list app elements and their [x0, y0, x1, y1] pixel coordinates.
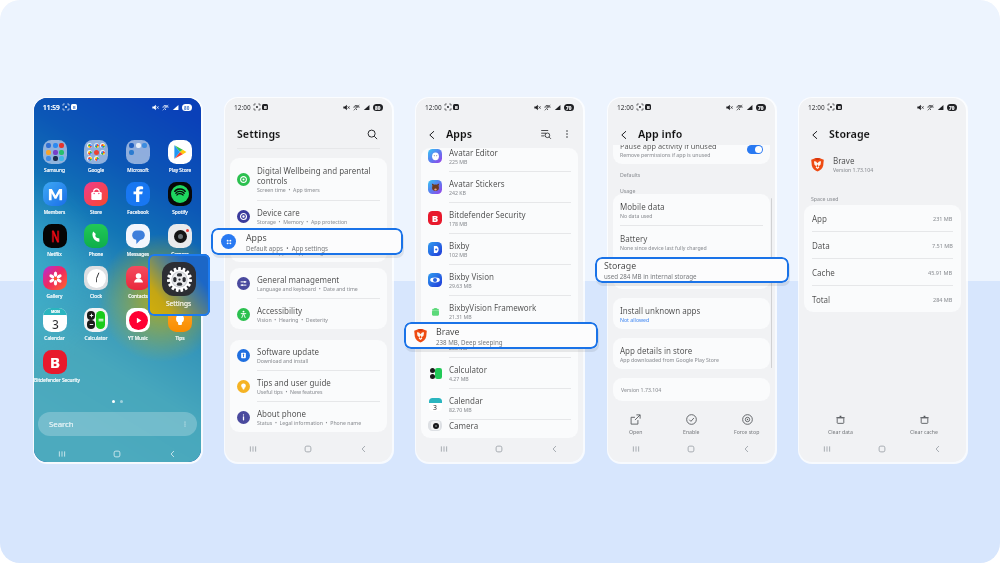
button[interactable]: Mobile data — [613, 194, 770, 225]
button[interactable]: Clock — [75, 266, 117, 300]
button[interactable]: Back — [145, 443, 201, 462]
button[interactable]: Device care — [230, 201, 387, 231]
staticText: B — [264, 105, 267, 110]
button[interactable]: Calculator — [421, 358, 578, 388]
button[interactable]: General management — [230, 268, 387, 298]
button[interactable]: Back — [336, 438, 392, 460]
button[interactable]: Install unknown apps — [613, 298, 770, 329]
button[interactable]: Back — [910, 438, 966, 460]
staticText: B — [73, 105, 76, 110]
button[interactable]: Recents — [416, 438, 471, 460]
button[interactable]: Home — [663, 438, 719, 460]
staticText: Clock — [75, 293, 117, 300]
button[interactable]: Clear cache — [882, 410, 966, 438]
button[interactable]: Clear data — [799, 410, 882, 438]
button[interactable]: MON — [34, 308, 75, 342]
staticText: Brave — [833, 155, 855, 166]
button[interactable]: Accessibility — [230, 299, 387, 329]
button[interactable]: Messages — [117, 224, 159, 258]
button[interactable]: Recents — [608, 438, 663, 460]
staticText: Camera — [159, 251, 201, 258]
button[interactable]: Brave — [421, 327, 578, 357]
button[interactable]: Settings — [159, 266, 201, 300]
button[interactable]: Recents — [225, 438, 280, 460]
button[interactable]: Toggle — [747, 145, 763, 154]
button[interactable]: Back — [527, 438, 583, 460]
button[interactable]: 3 — [421, 389, 578, 419]
button[interactable]: Samsung — [34, 140, 75, 174]
button[interactable]: Apps — [211, 228, 403, 255]
button[interactable]: About phone — [230, 402, 387, 432]
button[interactable]: Search — [38, 412, 197, 436]
staticText: Netflix — [34, 251, 75, 258]
button[interactable]: Tips — [159, 308, 201, 342]
button[interactable]: Back — [425, 128, 438, 141]
button[interactable]: Contacts — [117, 266, 159, 300]
button[interactable]: Sort and search — [539, 127, 553, 141]
staticText: 225 MB — [449, 158, 468, 165]
button[interactable]: Gallery — [34, 266, 75, 300]
staticText: App downloaded from Google Play Store — [620, 356, 719, 363]
button[interactable]: Digital Wellbeing and parental controls — [230, 158, 387, 200]
button[interactable]: Back — [617, 128, 630, 141]
button[interactable]: Enable — [663, 410, 719, 438]
button[interactable]: Facebook — [117, 182, 159, 216]
button[interactable]: Back — [808, 128, 821, 141]
button[interactable]: Phone — [75, 224, 117, 258]
button[interactable]: Apps — [230, 232, 387, 262]
staticText: 284 MB — [933, 296, 953, 303]
button[interactable]: Tips and user guide — [230, 371, 387, 401]
button[interactable]: Bixby — [421, 234, 578, 264]
button[interactable]: BixbyVision Framework — [421, 296, 578, 326]
button[interactable]: Members — [34, 182, 75, 216]
button[interactable]: Camera — [159, 224, 201, 258]
button[interactable]: Force stop — [719, 410, 775, 438]
button[interactable]: Recents — [34, 443, 89, 462]
button[interactable]: Play Store — [159, 140, 201, 174]
button[interactable]: App — [804, 205, 961, 231]
button[interactable]: Battery — [613, 226, 770, 257]
button[interactable]: Home — [854, 438, 910, 460]
button[interactable]: More options — [560, 127, 574, 141]
button[interactable]: B — [34, 350, 75, 384]
staticText: Open — [629, 428, 643, 435]
staticText: Storage — [829, 127, 870, 141]
button[interactable]: Netflix — [34, 224, 75, 258]
button[interactable]: Back — [719, 438, 775, 460]
staticText: Language and keyboard • Date and time — [257, 285, 358, 292]
button[interactable]: Google — [75, 140, 117, 174]
button[interactable]: Bixby Vision — [421, 265, 578, 295]
button[interactable]: Store — [75, 182, 117, 216]
button[interactable]: Total — [804, 286, 961, 312]
button[interactable]: Brave — [404, 322, 598, 349]
button[interactable]: Recents — [799, 438, 854, 460]
button[interactable]: Spotify — [159, 182, 201, 216]
button[interactable]: Settings — [148, 254, 210, 316]
button[interactable]: Calculator — [75, 308, 117, 342]
staticText: Bitdefender Security — [449, 209, 526, 220]
button[interactable]: Cache — [804, 259, 961, 285]
button[interactable]: Avatar Editor — [421, 148, 578, 171]
button[interactable]: Camera — [421, 420, 578, 431]
button[interactable]: Software update — [230, 340, 387, 370]
staticText: used 284 MB in internal storage — [620, 276, 698, 283]
staticText: Settings — [237, 127, 281, 141]
staticText: 21.31 MB — [449, 313, 472, 320]
button[interactable]: Storage — [595, 257, 789, 283]
button[interactable]: Storage — [613, 258, 770, 289]
button[interactable]: Avatar Stickers — [421, 172, 578, 202]
button[interactable]: Microsoft — [117, 140, 159, 174]
staticText: Facebook — [117, 209, 159, 216]
button[interactable]: Open — [608, 410, 663, 438]
button[interactable]: App details in store — [613, 338, 770, 369]
staticText: Usage — [620, 187, 636, 194]
staticText: Microsoft — [117, 167, 159, 174]
button[interactable]: Search — [365, 127, 380, 142]
button[interactable]: B — [421, 203, 578, 233]
button[interactable]: Home — [280, 438, 336, 460]
button[interactable]: Home — [471, 438, 527, 460]
button[interactable]: Data — [804, 232, 961, 258]
button[interactable]: Home — [89, 443, 145, 462]
staticText: Settings — [166, 299, 192, 308]
button[interactable]: YT Music — [117, 308, 159, 342]
